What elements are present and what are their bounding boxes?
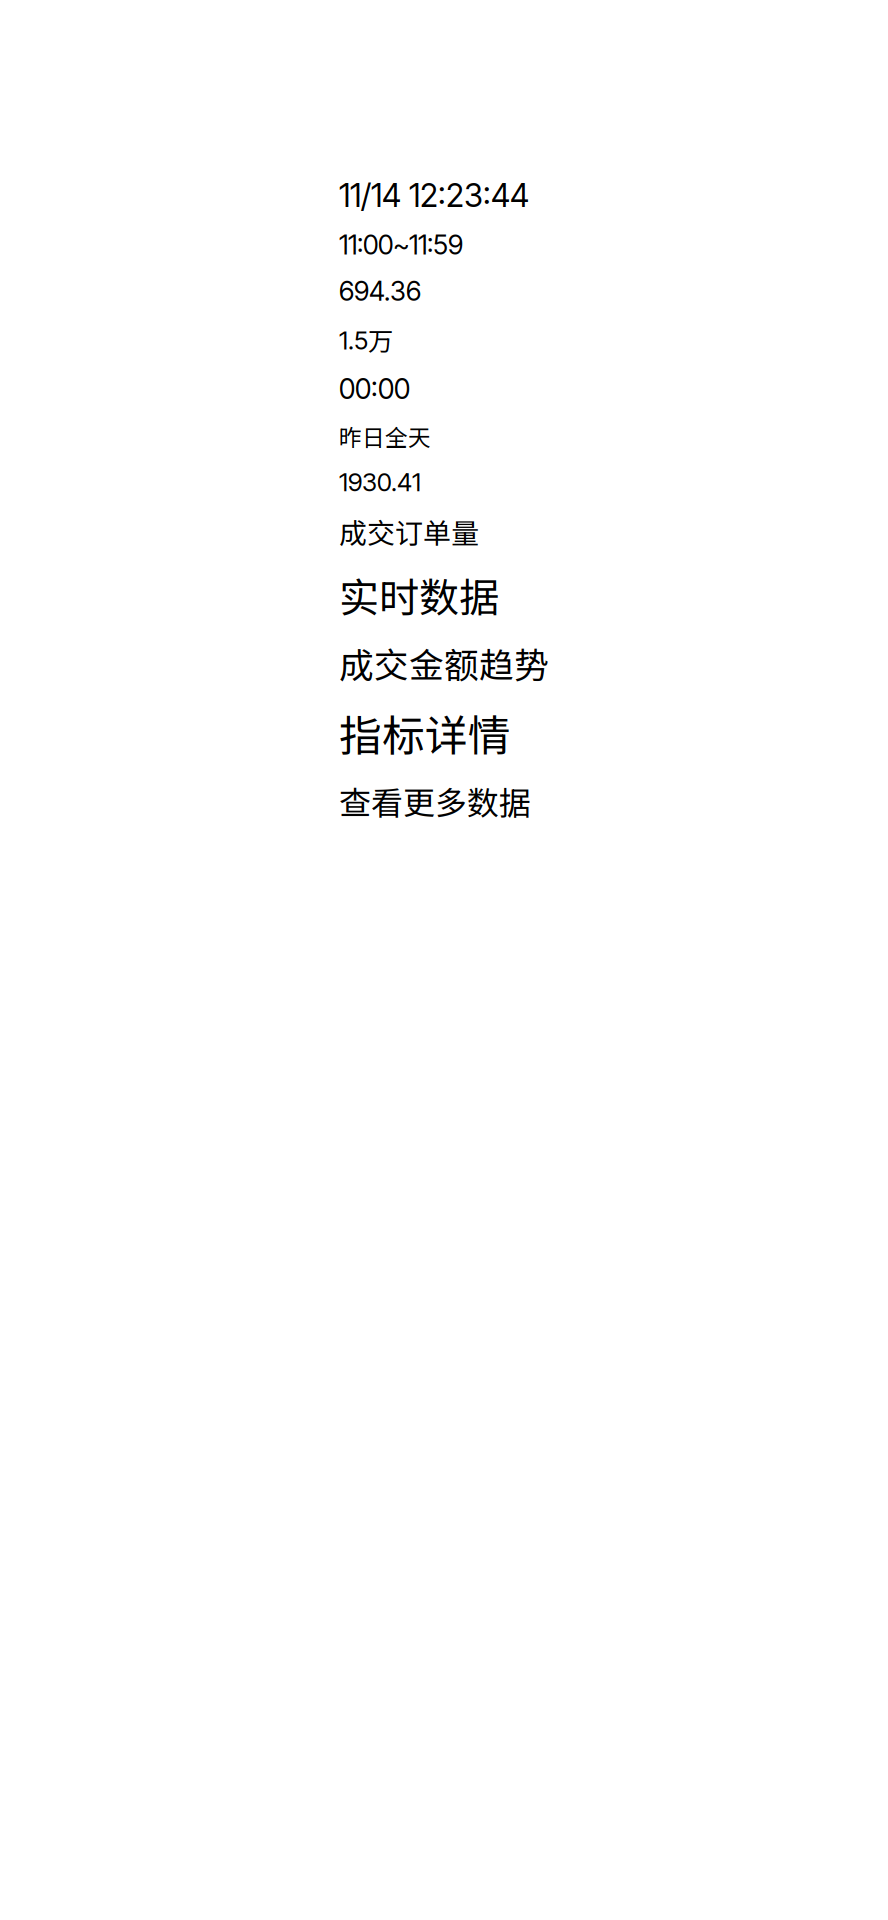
staticText: 成交金额趋势: [339, 638, 549, 688]
staticText: 查看更多数据: [339, 778, 531, 824]
staticText: 11:00~11:59: [339, 229, 463, 261]
staticText: 694.36: [339, 275, 421, 307]
staticText: 指标详情: [339, 702, 511, 764]
staticText: 成交订单量: [339, 511, 479, 552]
staticText: 昨日全天: [339, 420, 431, 453]
staticText: 11/14 12:23:44: [339, 176, 529, 215]
staticText: 1930.41: [339, 467, 421, 497]
staticText: 00:00: [339, 372, 410, 406]
staticText: 实时数据: [339, 566, 499, 624]
staticText: 1.5万: [339, 321, 393, 358]
